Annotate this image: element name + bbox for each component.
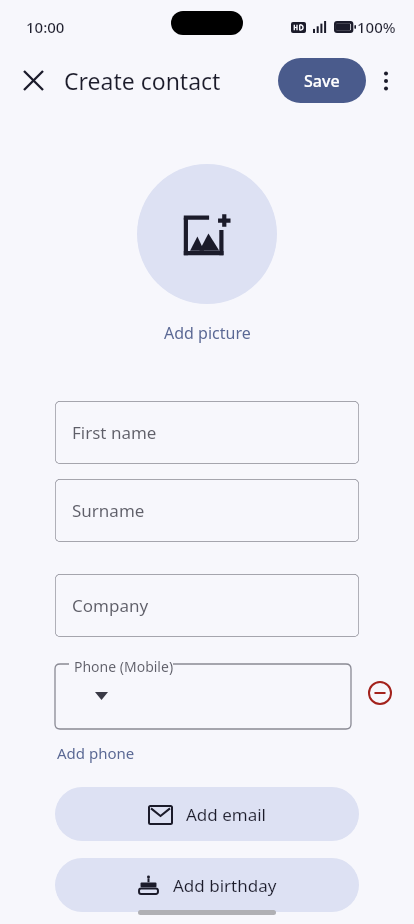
button[interactable]: First name xyxy=(55,401,359,464)
staticText: Add birthday xyxy=(173,874,277,897)
staticText: 100% xyxy=(357,17,396,37)
button[interactable]: Close xyxy=(14,61,52,99)
staticText: 10:00 xyxy=(26,17,65,37)
staticText: Add phone xyxy=(57,743,135,763)
staticText: Create contact xyxy=(64,65,221,96)
staticText: Surname xyxy=(72,499,145,522)
staticText: Save xyxy=(304,70,340,92)
button[interactable]: Add picture xyxy=(137,164,277,304)
button[interactable]: Add phone xyxy=(55,741,137,765)
staticText: Add email xyxy=(186,803,266,826)
button[interactable]: Add email xyxy=(55,787,359,841)
button[interactable]: Phone (Mobile) xyxy=(55,657,351,729)
button[interactable]: Remove phone xyxy=(360,673,400,713)
button[interactable]: More options xyxy=(366,61,406,101)
button[interactable]: Company xyxy=(55,574,359,637)
button[interactable]: Save xyxy=(278,58,366,103)
button[interactable]: Add picture xyxy=(160,320,255,346)
button[interactable]: Surname xyxy=(55,479,359,542)
staticText: Add picture xyxy=(164,322,251,344)
staticText: Company xyxy=(72,594,149,617)
staticText: Phone (Mobile) xyxy=(74,657,174,676)
staticText: First name xyxy=(72,421,157,444)
button[interactable]: Add birthday xyxy=(55,858,359,912)
